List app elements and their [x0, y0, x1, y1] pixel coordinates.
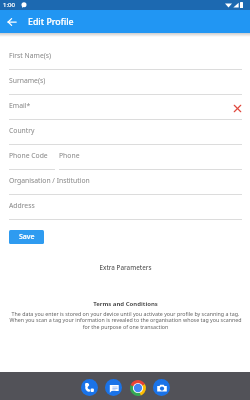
button[interactable]: Country	[9, 120, 242, 145]
button[interactable]: Back	[0, 10, 23, 33]
staticText: Extra Parameters	[9, 263, 242, 272]
button[interactable]: Messages	[105, 379, 122, 396]
button[interactable]: Chrome	[129, 379, 146, 396]
staticText: Email*	[9, 101, 31, 110]
button[interactable]: Email*	[9, 95, 242, 120]
button[interactable]: First Name(s)	[9, 45, 242, 70]
staticText: Terms and Conditions	[9, 300, 242, 308]
staticText: Country	[9, 126, 35, 135]
staticText: Organisation / Institution	[9, 176, 90, 185]
button[interactable]: Address	[9, 195, 242, 220]
button[interactable]: Phone Code	[9, 145, 55, 170]
staticText: Phone	[59, 151, 80, 160]
button[interactable]: Save	[9, 230, 44, 244]
staticText: Address	[9, 201, 35, 210]
staticText: Save	[19, 232, 35, 242]
staticText: Edit Profile	[28, 16, 74, 28]
staticText: Surname(s)	[9, 76, 46, 85]
button[interactable]: Phone	[59, 145, 242, 170]
button[interactable]: Organisation / Institution	[9, 170, 242, 195]
staticText: Phone Code	[9, 151, 48, 160]
staticText: First Name(s)	[9, 51, 52, 60]
staticText: 1:00	[3, 1, 15, 9]
staticText: The data you enter is stored on your dev…	[9, 310, 242, 331]
button[interactable]: Surname(s)	[9, 70, 242, 95]
button[interactable]: Phone	[81, 379, 98, 396]
button[interactable]: Camera	[153, 379, 170, 396]
